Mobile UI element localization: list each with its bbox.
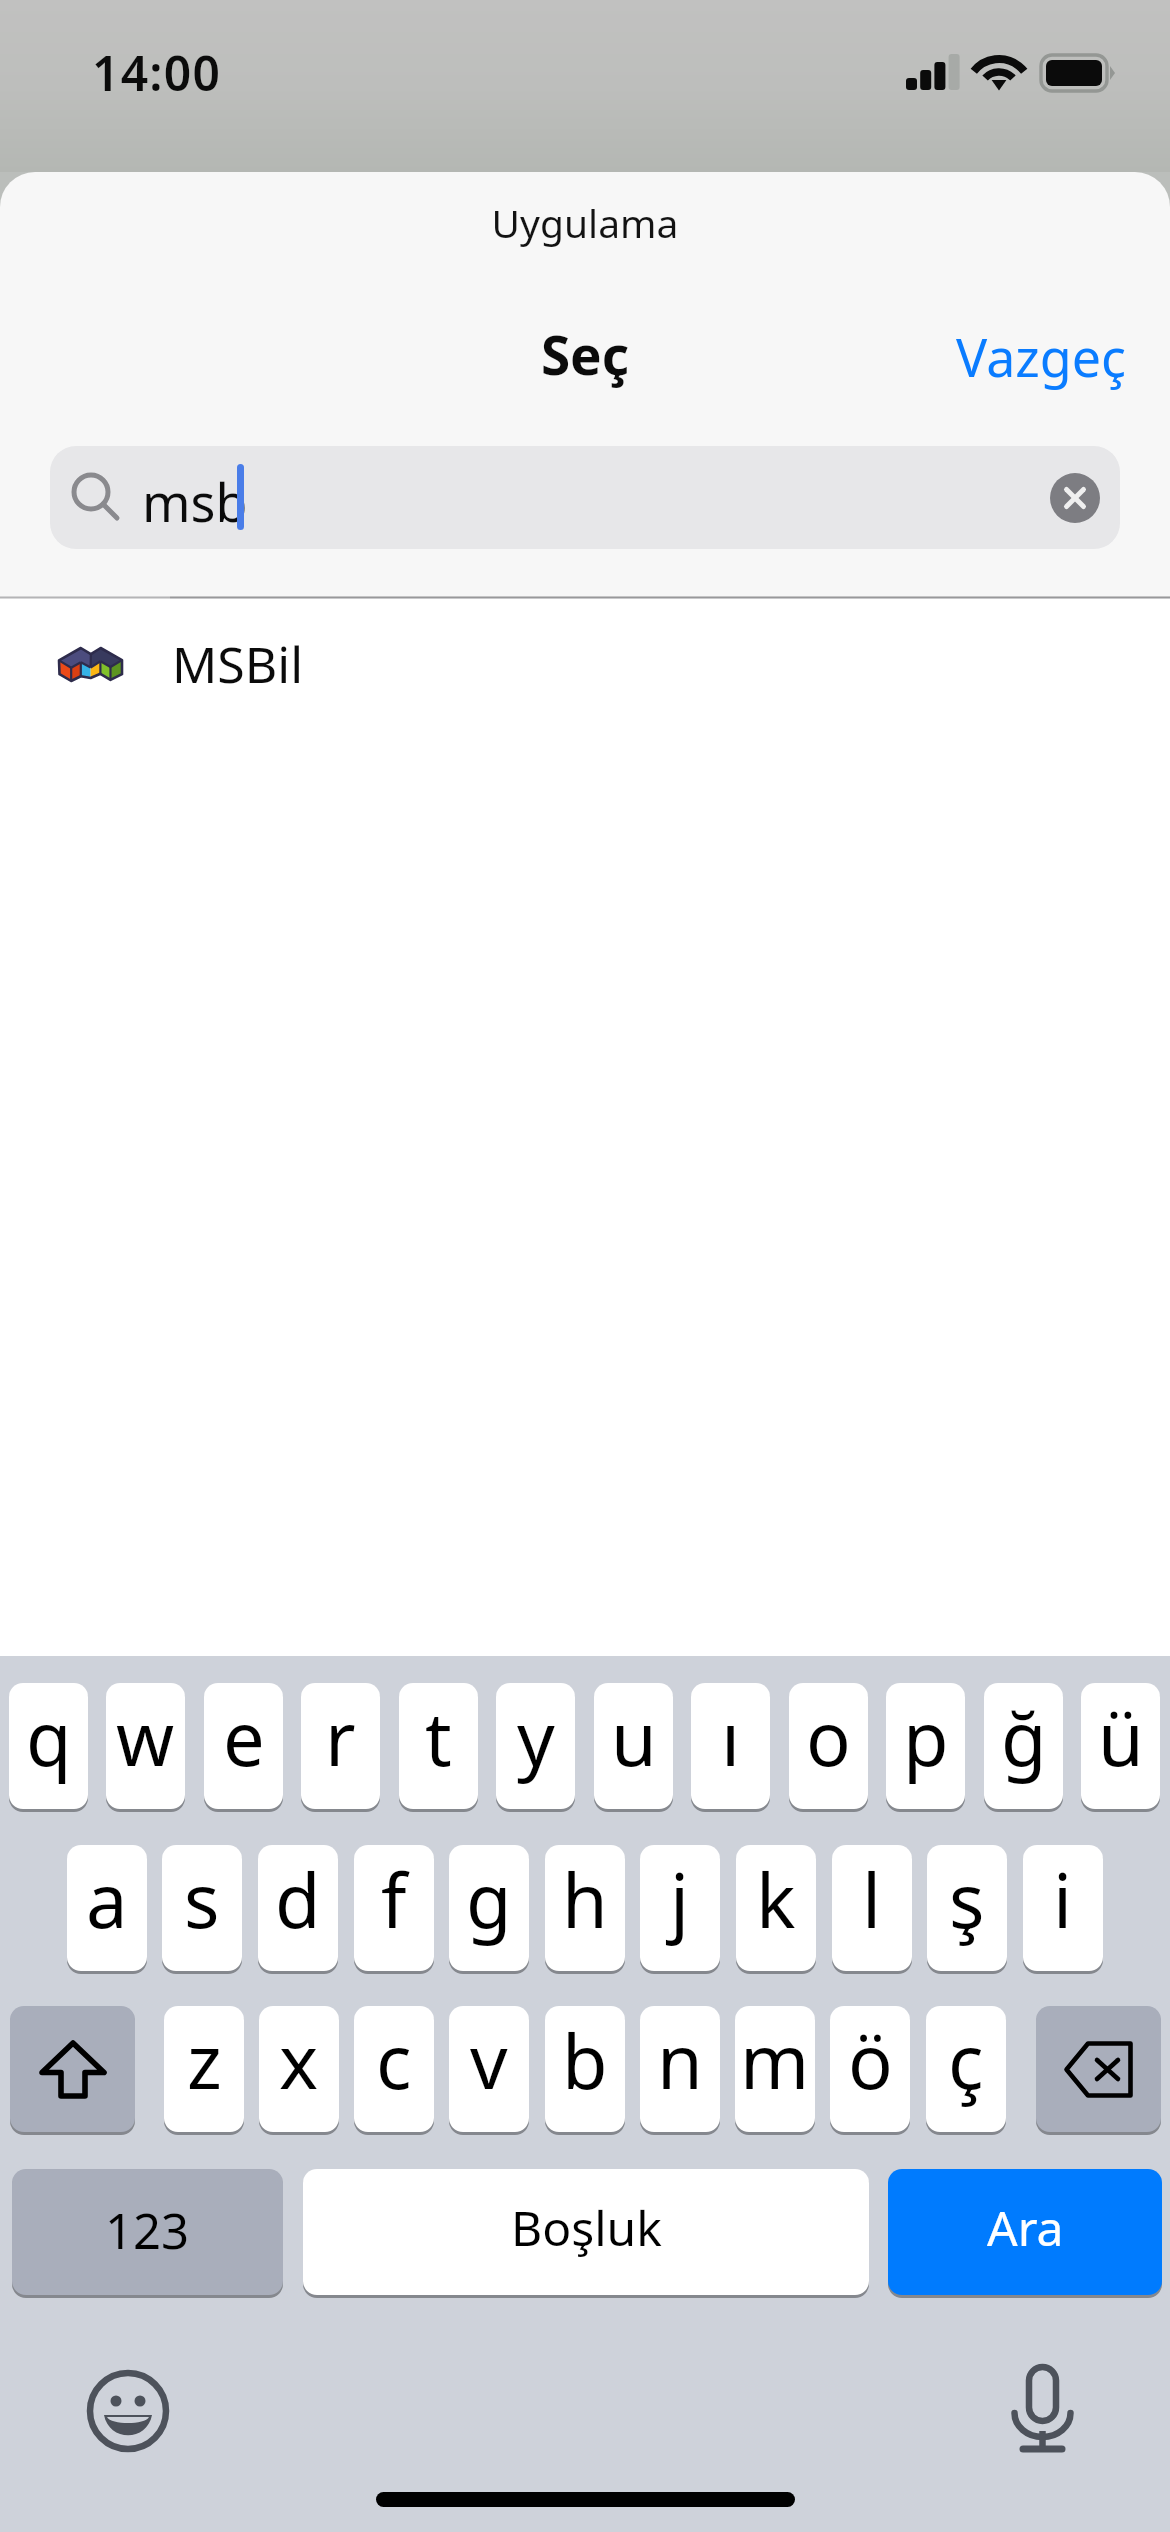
staticText: ç — [948, 2010, 984, 2111]
staticText: Uygulama — [0, 196, 1170, 249]
staticText: ö — [848, 2010, 893, 2111]
button[interactable]: ü — [1081, 1683, 1160, 1809]
button[interactable]: ö — [830, 2006, 910, 2132]
staticText: l — [862, 1849, 882, 1950]
button[interactable]: j — [640, 1845, 720, 1971]
staticText: Vazgeç — [956, 321, 1127, 392]
staticText: r — [325, 1687, 356, 1788]
staticText: Seç — [0, 318, 1170, 390]
button[interactable]: y — [496, 1683, 575, 1809]
staticText: f — [381, 1849, 407, 1950]
staticText: o — [806, 1687, 851, 1788]
staticText: x — [279, 2010, 319, 2111]
staticText: d — [275, 1849, 321, 1950]
button[interactable]: msb — [50, 446, 1120, 549]
button[interactable]: k — [736, 1845, 816, 1971]
button[interactable]: ı — [691, 1683, 770, 1809]
button[interactable]: q — [9, 1683, 88, 1809]
staticText: z — [187, 2010, 222, 2111]
staticText: ğ — [1001, 1687, 1047, 1788]
staticText: 123 — [105, 2197, 190, 2264]
staticText: msb — [142, 466, 248, 537]
button[interactable]: v — [449, 2006, 529, 2132]
button[interactable]: ş — [927, 1845, 1007, 1971]
button[interactable]: i — [1023, 1845, 1103, 1971]
button[interactable]: u — [594, 1683, 673, 1809]
staticText: p — [903, 1687, 949, 1788]
staticText: w — [116, 1687, 175, 1788]
button[interactable]: ç — [926, 2006, 1006, 2132]
button[interactable]: e — [204, 1683, 283, 1809]
staticText: Ara — [987, 2195, 1064, 2260]
button[interactable]: b — [545, 2006, 625, 2132]
button[interactable]: c — [354, 2006, 434, 2132]
button[interactable]: f — [354, 1845, 434, 1971]
staticText: g — [466, 1849, 512, 1950]
staticText: Boşluk — [511, 2195, 662, 2260]
staticText: e — [223, 1687, 265, 1788]
staticText: MSBil — [172, 630, 304, 698]
button[interactable]: t — [399, 1683, 478, 1809]
button[interactable]: Vazgeç — [925, 313, 1153, 399]
staticText: c — [376, 2010, 412, 2111]
button[interactable]: o — [789, 1683, 868, 1809]
button[interactable]: Boşluk — [303, 2169, 869, 2295]
button[interactable]: MSBil — [0, 599, 1170, 737]
staticText: s — [184, 1849, 220, 1950]
button[interactable]: n — [640, 2006, 720, 2132]
staticText: a — [86, 1849, 128, 1950]
staticText: b — [562, 2010, 608, 2111]
staticText: 14:00 — [92, 40, 222, 105]
staticText: v — [470, 2010, 508, 2111]
staticText: i — [1053, 1849, 1073, 1950]
staticText: y — [517, 1687, 555, 1788]
button[interactable]: r — [301, 1683, 380, 1809]
button[interactable]: x — [259, 2006, 339, 2132]
staticText: h — [562, 1849, 608, 1950]
button[interactable]: l — [832, 1845, 912, 1971]
button[interactable]: h — [545, 1845, 625, 1971]
button[interactable]: Ara — [888, 2169, 1162, 2295]
button[interactable]: Shift — [10, 2006, 135, 2132]
button[interactable]: Dictation — [1010, 2363, 1080, 2455]
button[interactable]: p — [886, 1683, 965, 1809]
staticText: u — [611, 1687, 657, 1788]
staticText: ı — [721, 1687, 741, 1788]
staticText: j — [670, 1849, 690, 1950]
button[interactable]: a — [67, 1845, 147, 1971]
button[interactable]: Backspace — [1036, 2006, 1161, 2132]
staticText: n — [657, 2010, 703, 2111]
staticText: k — [756, 1849, 796, 1950]
staticText: ü — [1098, 1687, 1144, 1788]
staticText: m — [740, 2010, 810, 2111]
staticText: q — [26, 1687, 72, 1788]
button[interactable]: g — [449, 1845, 529, 1971]
button[interactable]: s — [162, 1845, 242, 1971]
button[interactable]: Clear search — [1050, 473, 1100, 523]
button[interactable]: z — [164, 2006, 244, 2132]
staticText: ş — [949, 1849, 985, 1950]
staticText: t — [425, 1687, 452, 1788]
button[interactable]: Emoji keyboard — [86, 2369, 170, 2453]
button[interactable]: 123 — [12, 2169, 283, 2295]
button[interactable]: m — [735, 2006, 815, 2132]
button[interactable]: ğ — [984, 1683, 1063, 1809]
button[interactable]: w — [106, 1683, 185, 1809]
button[interactable]: d — [258, 1845, 338, 1971]
